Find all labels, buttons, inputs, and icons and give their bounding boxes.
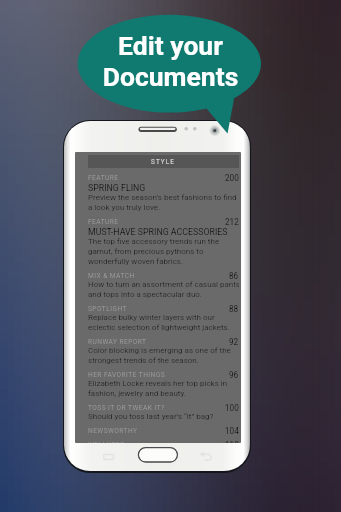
button[interactable]: FEATURE bbox=[88, 173, 239, 217]
staticText: MUST-HAVE SPRING ACCESSORIES bbox=[88, 227, 228, 237]
staticText: NEWSWORTHY bbox=[88, 427, 138, 435]
button[interactable]: SPOTLIGHT bbox=[88, 304, 239, 337]
staticText: 212 bbox=[225, 217, 239, 226]
button[interactable]: STYLE bbox=[88, 155, 239, 168]
staticText: Replace bulky winter layers with our ecl… bbox=[88, 313, 230, 332]
staticText: The top five accessory trends run the ga… bbox=[88, 237, 220, 266]
staticText: TOSS IT OR TWEAK IT? bbox=[88, 404, 165, 412]
staticText: SPRING FLING bbox=[88, 183, 146, 193]
staticText: SPOTLIGHT bbox=[88, 305, 127, 313]
staticText: FEATURE bbox=[88, 174, 119, 182]
staticText: Elizabeth Locke reveals her top picks in… bbox=[88, 379, 228, 398]
staticText: 104 bbox=[225, 426, 239, 435]
staticText: Edit your Documents bbox=[79, 30, 262, 92]
button[interactable]: FEATURE bbox=[88, 217, 239, 271]
staticText: 86 bbox=[229, 271, 239, 280]
staticText: HER FAVORITE THINGS bbox=[88, 371, 166, 379]
button[interactable]: WELLNESS bbox=[88, 440, 239, 443]
staticText: How to turn an assortment of casual pant… bbox=[88, 280, 239, 299]
staticText: STYLE bbox=[151, 158, 176, 166]
staticText: 96 bbox=[229, 370, 239, 379]
staticText: MIX & MATCH bbox=[88, 272, 135, 280]
staticText: WELLNESS bbox=[88, 441, 125, 443]
staticText: 110 bbox=[225, 440, 239, 443]
staticText: Should you toss last year’s “it” bag? bbox=[88, 412, 214, 421]
staticText: Preview the season’s best fashions to fi… bbox=[88, 193, 237, 212]
staticText: RUNWAY REPORT bbox=[88, 338, 147, 346]
staticText: 100 bbox=[225, 403, 239, 412]
button[interactable]: TOSS IT OR TWEAK IT? bbox=[88, 403, 239, 426]
staticText: 92 bbox=[229, 337, 239, 346]
button[interactable]: HER FAVORITE THINGS bbox=[88, 370, 239, 403]
staticText: 200 bbox=[225, 173, 239, 182]
button[interactable]: NEWSWORTHY bbox=[88, 426, 239, 440]
button[interactable]: MIX & MATCH bbox=[88, 271, 239, 304]
button[interactable]: RUNWAY REPORT bbox=[88, 337, 239, 370]
staticText: FEATURE bbox=[88, 218, 119, 226]
staticText: Color blocking is emerging as one of the… bbox=[88, 346, 231, 365]
staticText: 88 bbox=[229, 304, 239, 313]
